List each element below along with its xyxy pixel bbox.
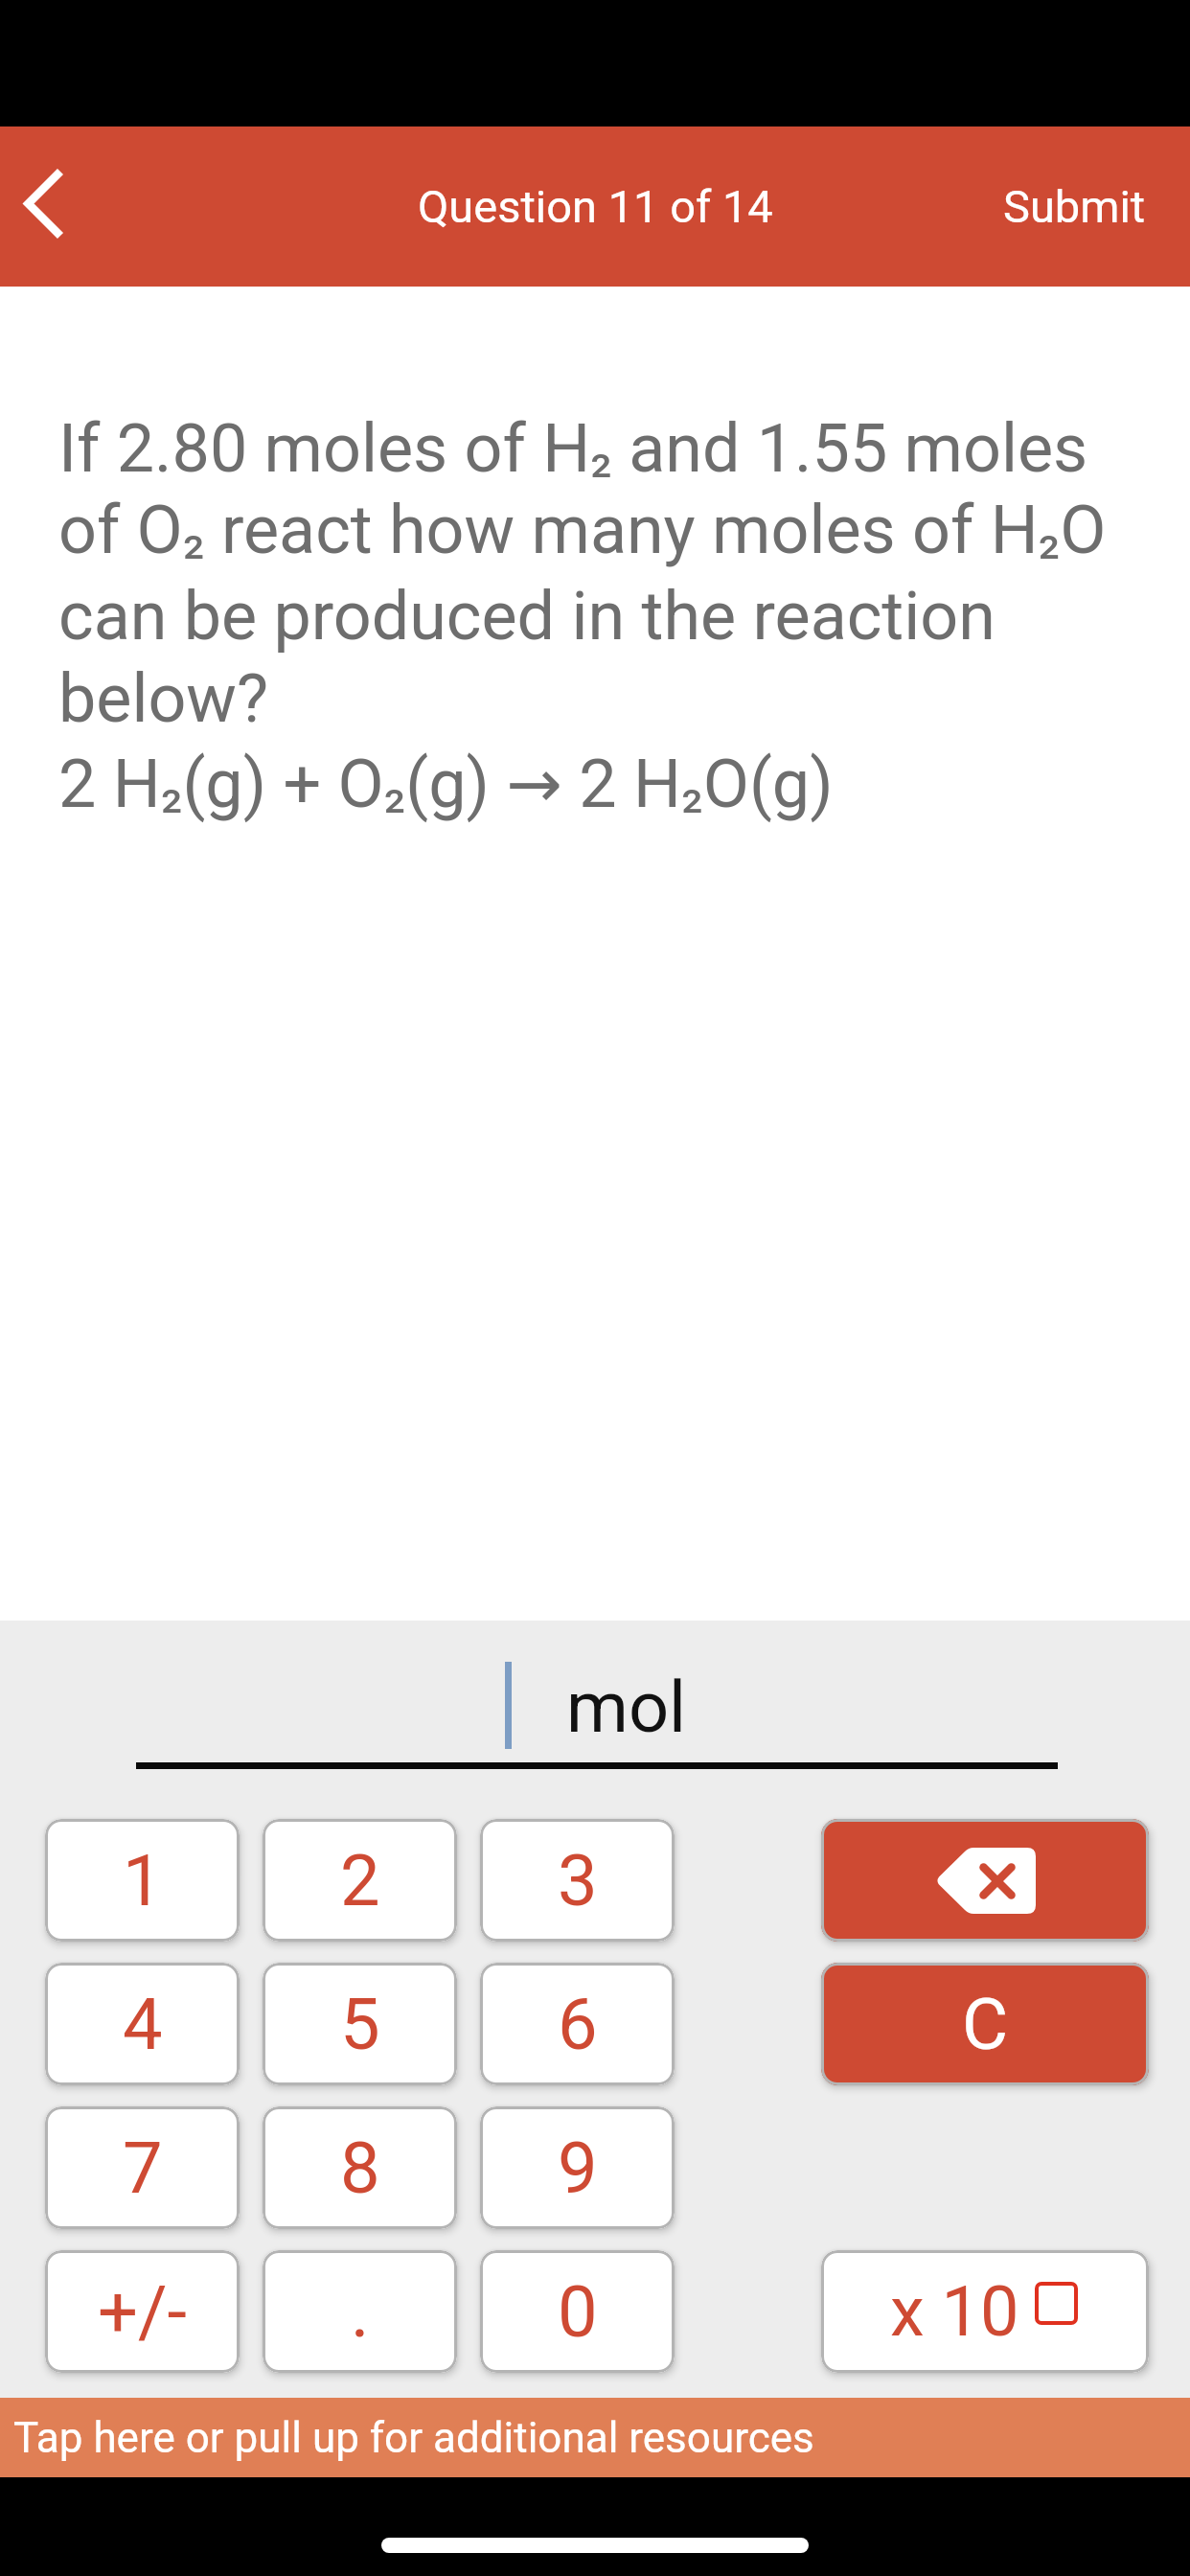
staticText: 8 — [340, 2127, 380, 2210]
button[interactable]: Tap here or pull up for additional resou… — [0, 2398, 1190, 2477]
staticText: below? — [58, 659, 269, 738]
staticText: . — [351, 2270, 370, 2354]
button[interactable]: 0 — [480, 2250, 675, 2373]
staticText: 3 — [558, 1839, 598, 1922]
staticText: 2 — [340, 1839, 380, 1922]
staticText: 0 — [558, 2270, 598, 2354]
button[interactable]: 4 — [45, 1963, 240, 2085]
staticText: 1 — [123, 1839, 163, 1922]
button[interactable]: 6 — [480, 1963, 675, 2085]
staticText: 5 — [340, 1983, 380, 2066]
button[interactable]: 7 — [45, 2106, 240, 2229]
button[interactable]: +/- — [45, 2250, 240, 2373]
staticText: 2 H₂(g) + O₂(g) → 2 H₂O(g) — [58, 745, 834, 823]
staticText: 9 — [558, 2127, 598, 2210]
staticText: can be produced in the reaction — [58, 577, 995, 655]
button[interactable]: 9 — [480, 2106, 675, 2229]
staticText: Tap here or pull up for additional resou… — [13, 2413, 814, 2463]
staticText: +/- — [98, 2270, 187, 2354]
staticText: C — [962, 1983, 1009, 2066]
staticText: x 10 — [890, 2271, 1019, 2352]
staticText: Question 11 of 14 — [418, 180, 773, 233]
button[interactable]: Delete — [821, 1819, 1149, 1942]
button[interactable]: 1 — [45, 1819, 240, 1942]
staticText: 6 — [558, 1983, 598, 2066]
button[interactable]: Submit — [959, 142, 1190, 271]
button[interactable]: C — [821, 1963, 1149, 2085]
button[interactable]: . — [263, 2250, 457, 2373]
staticText: mol — [566, 1666, 687, 1749]
staticText: Submit — [1003, 180, 1146, 233]
button[interactable]: Back — [0, 126, 115, 287]
button[interactable]: 2 — [263, 1819, 457, 1942]
button[interactable]: 3 — [480, 1819, 675, 1942]
staticText: 7 — [123, 2127, 163, 2210]
staticText: of O₂ react how many moles of H₂O — [58, 491, 1107, 569]
staticText: If 2.80 moles of H₂ and 1.55 moles — [58, 409, 1088, 488]
button[interactable]: 5 — [263, 1963, 457, 2085]
button[interactable]: x 10 — [821, 2250, 1149, 2373]
button[interactable]: 8 — [263, 2106, 457, 2229]
staticText: 4 — [123, 1983, 163, 2066]
